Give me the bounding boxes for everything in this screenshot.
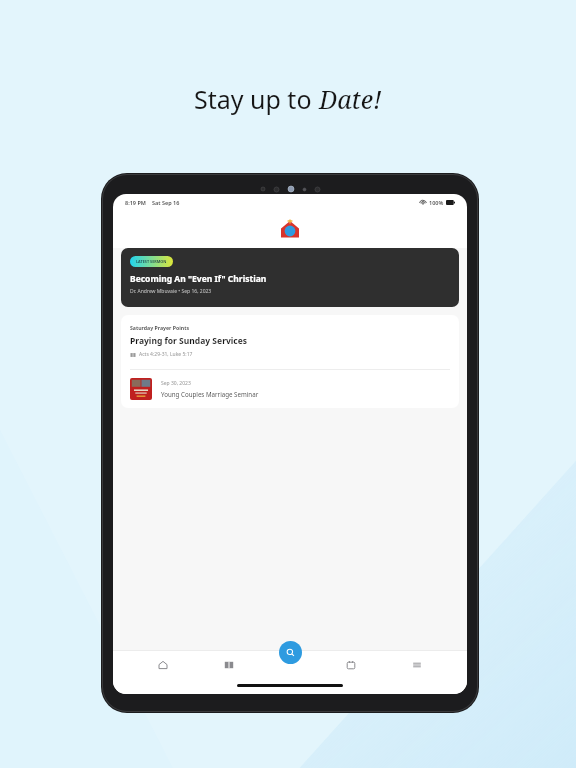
staticText: Becoming An "Even If" Christian xyxy=(130,273,267,285)
button[interactable]: Home xyxy=(146,660,180,680)
staticText: 8:19 PM xyxy=(125,199,146,206)
button[interactable]: Saturday Prayer Points xyxy=(121,315,459,369)
button[interactable]: Bible xyxy=(212,660,246,680)
button[interactable]: LATEST SERMON xyxy=(121,248,459,307)
staticText: Praying for Sunday Services xyxy=(130,335,248,347)
button[interactable]: More xyxy=(400,660,434,680)
staticText: Dr. Andrew Mbuvaie • Sep 16, 2023 xyxy=(130,288,212,295)
staticText: 100% xyxy=(429,199,444,206)
staticText: Saturday Prayer Points xyxy=(130,324,190,331)
staticText: Young Couples Marriage Seminar xyxy=(161,390,259,398)
staticText: Sep 30, 2023 xyxy=(161,380,191,387)
staticText: Sat Sep 16 xyxy=(152,199,180,206)
staticText: Acts 4:29-31, Luke 5:17 xyxy=(139,351,193,358)
button[interactable]: Events xyxy=(334,660,368,680)
staticText: Stay up to xyxy=(194,82,319,116)
staticText: LATEST SERMON xyxy=(136,259,167,264)
button[interactable]: Sep 30, 2023 xyxy=(121,370,459,408)
staticText: Date! xyxy=(319,82,382,116)
button[interactable]: Search xyxy=(279,641,302,664)
